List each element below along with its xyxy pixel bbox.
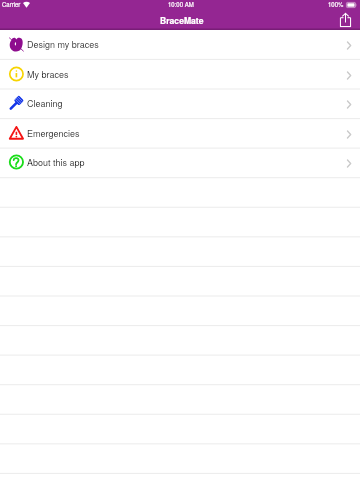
button[interactable]: About this app	[0, 148, 360, 178]
staticText: About this app	[27, 156, 85, 169]
staticText: My braces	[27, 68, 69, 81]
staticText: Carrier	[2, 0, 21, 9]
staticText: Emergencies	[27, 127, 80, 140]
button[interactable]: Cleaning	[0, 89, 360, 119]
button[interactable]: Emergencies	[0, 119, 360, 149]
button[interactable]: Design my braces	[0, 30, 360, 60]
button[interactable]: Share	[337, 13, 354, 30]
staticText: Cleaning	[27, 97, 63, 110]
staticText: BraceMate	[160, 14, 204, 26]
staticText: Design my braces	[27, 38, 99, 51]
staticText: 100%	[328, 0, 344, 9]
button[interactable]: My braces	[0, 60, 360, 90]
staticText: 10:00 AM	[168, 0, 194, 9]
